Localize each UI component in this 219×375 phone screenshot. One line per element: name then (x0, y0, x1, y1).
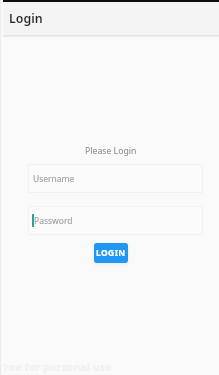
staticText: Username (33, 173, 75, 185)
button[interactable]: Login (0, 2, 219, 35)
staticText: Password (34, 215, 73, 227)
button[interactable]: Password (29, 207, 202, 234)
staticText: free for personal use (0, 359, 112, 374)
button[interactable]: Username (29, 165, 202, 192)
staticText: Please Login (85, 145, 137, 157)
staticText: Login (9, 10, 43, 27)
staticText: LOGIN (96, 247, 126, 259)
button[interactable]: LOGIN (94, 243, 128, 263)
